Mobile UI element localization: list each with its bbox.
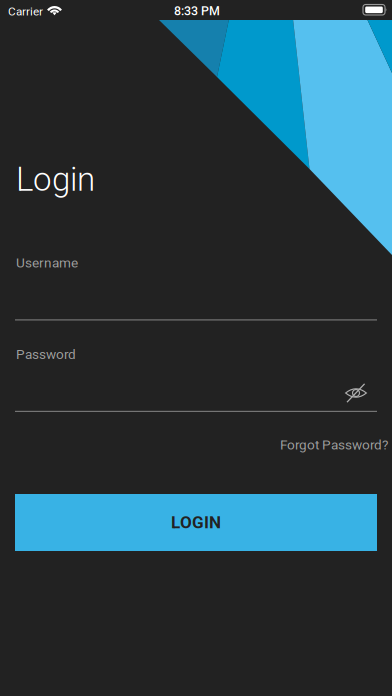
staticText: LOGIN <box>171 512 221 532</box>
staticText: Forgot Password? <box>280 437 388 453</box>
button[interactable]: Username <box>15 255 378 321</box>
staticText: 8:33 PM <box>174 4 220 18</box>
button[interactable]: Show password <box>339 378 373 408</box>
staticText: Username <box>16 255 78 271</box>
staticText: Carrier <box>8 4 43 18</box>
button[interactable]: LOGIN <box>15 494 377 551</box>
button[interactable]: Forgot Password? <box>276 433 392 457</box>
staticText: Login <box>16 160 95 199</box>
staticText: Password <box>16 346 76 362</box>
button[interactable]: Password <box>15 346 378 414</box>
